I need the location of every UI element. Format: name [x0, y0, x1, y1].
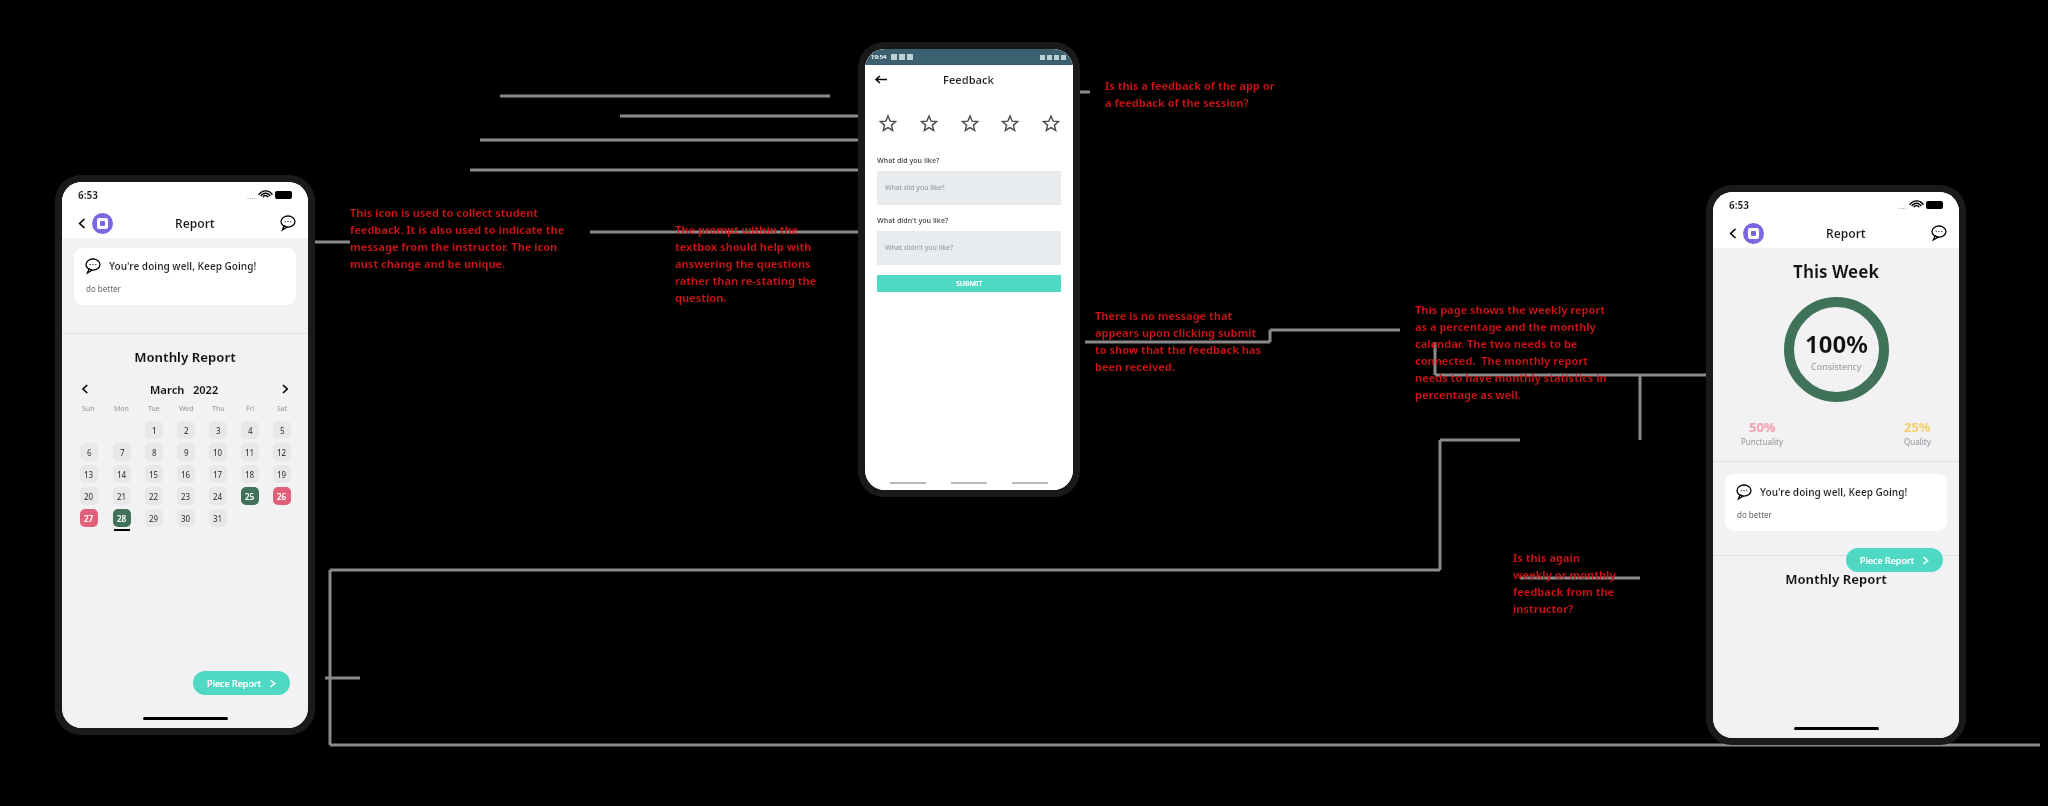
button[interactable]: App logo	[92, 213, 113, 234]
staticText: 27	[84, 513, 94, 524]
staticText: feedback. It is also used to indicate th…	[350, 222, 565, 237]
staticText: 26	[277, 491, 287, 502]
button[interactable]: Messages	[1929, 223, 1949, 243]
button[interactable]: Back	[873, 71, 889, 87]
button[interactable]: 10	[209, 443, 227, 461]
button[interactable]: Rate 4 stars	[1001, 115, 1018, 132]
button[interactable]: 23	[177, 487, 195, 505]
button[interactable]: 11	[241, 443, 259, 461]
button[interactable]: 15	[145, 465, 163, 483]
button[interactable]: 7	[113, 443, 131, 461]
staticText: 12	[277, 447, 287, 458]
button[interactable]: 9	[177, 443, 195, 461]
button[interactable]: Previous month	[76, 380, 94, 398]
staticText: needs to have monthly statistics in	[1415, 370, 1607, 385]
staticText: 6	[87, 447, 92, 458]
button[interactable]: 12	[273, 443, 291, 461]
button[interactable]: You're doing well, Keep Going!	[74, 248, 296, 305]
button[interactable]: 29	[145, 509, 163, 527]
staticText: do better	[86, 283, 121, 294]
staticText: 17	[213, 469, 223, 480]
staticText: 50%	[1749, 418, 1776, 436]
staticText: 21	[117, 491, 127, 502]
staticText: a feedback of the session?	[1105, 95, 1249, 110]
button[interactable]: 2	[177, 421, 195, 439]
staticText: 4	[248, 425, 253, 436]
button[interactable]: 27	[80, 509, 98, 527]
button[interactable]: Back	[72, 213, 92, 233]
button[interactable]: Rate 5 stars	[1042, 115, 1059, 132]
staticText: There is no message that	[1095, 308, 1233, 323]
staticText: weekly or monthly	[1513, 567, 1616, 582]
staticText: 24	[213, 491, 223, 502]
button[interactable]: What didn't you like?	[877, 231, 1061, 265]
staticText: Quality	[1904, 436, 1931, 447]
button[interactable]: Rate 2 stars	[920, 115, 937, 132]
staticText: 20	[84, 491, 94, 502]
staticText: This icon is used to collect student	[350, 205, 539, 220]
button[interactable]: 3	[209, 421, 227, 439]
button[interactable]: 21	[113, 487, 131, 505]
staticText: percentage as well.	[1415, 387, 1521, 402]
staticText: 16	[181, 469, 191, 480]
staticText: 6:53	[78, 188, 98, 202]
button[interactable]: Messages	[278, 213, 298, 233]
button[interactable]: What did you like?	[877, 171, 1061, 205]
button[interactable]: 4	[241, 421, 259, 439]
button[interactable]: 19	[273, 465, 291, 483]
staticText: Feedback	[943, 72, 994, 87]
staticText: been received.	[1095, 359, 1175, 374]
staticText: 18	[245, 469, 255, 480]
button[interactable]: 30	[177, 509, 195, 527]
button[interactable]: 31	[209, 509, 227, 527]
button[interactable]: Piece Report	[193, 671, 290, 695]
staticText: Monthly Report	[62, 348, 308, 366]
button[interactable]: 22	[145, 487, 163, 505]
staticText: 29	[149, 513, 159, 524]
button[interactable]: Rate 3 stars	[961, 115, 978, 132]
staticText: The prompt within the	[675, 222, 799, 237]
staticText: 30	[181, 513, 191, 524]
button[interactable]: You're doing well, Keep Going!	[1725, 474, 1947, 531]
button[interactable]: 16	[177, 465, 195, 483]
button[interactable]: 18	[241, 465, 259, 483]
button[interactable]: 20	[80, 487, 98, 505]
button[interactable]: Next month	[276, 380, 294, 398]
staticText: 23	[181, 491, 191, 502]
button[interactable]: App logo	[1743, 223, 1764, 244]
staticText: Wed	[179, 404, 194, 414]
staticText: Fri	[246, 404, 255, 414]
staticText: 6:53	[1729, 198, 1749, 212]
staticText: What didn't you like?	[885, 243, 953, 253]
button[interactable]: 24	[209, 487, 227, 505]
button[interactable]: 14	[113, 465, 131, 483]
staticText: ....	[247, 190, 256, 201]
button[interactable]: SUBMIT	[877, 275, 1061, 292]
staticText: 2022	[193, 382, 219, 397]
staticText: You're doing well, Keep Going!	[1760, 485, 1908, 499]
button[interactable]: 17	[209, 465, 227, 483]
staticText: 9	[184, 447, 189, 458]
button[interactable]: 28	[113, 509, 131, 527]
staticText: Thu	[212, 404, 225, 414]
staticText: rather than re-stating the	[675, 273, 817, 288]
button[interactable]: 5	[273, 421, 291, 439]
button[interactable]: 13	[80, 465, 98, 483]
button[interactable]: 8	[145, 443, 163, 461]
staticText: Sun	[82, 404, 95, 414]
button[interactable]: Back	[1723, 223, 1743, 243]
staticText: 2	[184, 425, 189, 436]
staticText: 15	[149, 469, 159, 480]
button[interactable]: Piece Report	[1846, 548, 1943, 572]
staticText: must change and be unique.	[350, 256, 506, 271]
button[interactable]: 1	[145, 421, 163, 439]
staticText: Punctuality	[1741, 436, 1783, 447]
button[interactable]: 26	[273, 487, 291, 505]
button[interactable]: 25	[241, 487, 259, 505]
staticText: 3	[216, 425, 221, 436]
button[interactable]: Rate 1 stars	[879, 115, 896, 132]
staticText: SUBMIT	[956, 279, 983, 289]
staticText: message from the instructor. The icon	[350, 239, 558, 254]
button[interactable]: 6	[80, 443, 98, 461]
staticText: Monthly Report	[1713, 570, 1959, 588]
